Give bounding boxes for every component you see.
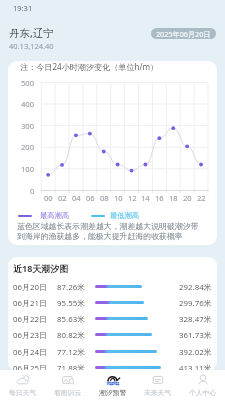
staticText: 最高潮高 xyxy=(40,211,70,220)
staticText: 292.84米 xyxy=(179,282,212,293)
button[interactable]: 06月23日 xyxy=(8,327,217,343)
staticText: 丹东,辽宁 xyxy=(9,26,54,40)
staticText: 06月25日 xyxy=(13,363,47,371)
staticText: 08 xyxy=(100,193,109,203)
staticText: 06月20日 xyxy=(13,282,47,293)
staticText: 06月24日 xyxy=(13,347,47,358)
staticText: 100 xyxy=(21,164,35,174)
button[interactable]: 06月20日 xyxy=(8,279,217,295)
staticText: 80.82米 xyxy=(57,330,86,341)
staticText: 未来天气 xyxy=(144,388,172,397)
staticText: 02 xyxy=(58,193,67,203)
staticText: 06 xyxy=(86,193,95,203)
staticText: 2025年06月20日 xyxy=(156,29,211,39)
button[interactable]: 06月24日 xyxy=(8,344,217,360)
staticText: 看图识云 xyxy=(54,388,82,397)
staticText: 300 xyxy=(21,121,35,131)
staticText: 328.47米 xyxy=(179,314,212,325)
staticText: 12 xyxy=(128,193,137,203)
staticText: 20 xyxy=(183,193,192,203)
staticText: 95.55米 xyxy=(57,298,86,309)
button[interactable]: 06月25日 xyxy=(8,360,217,371)
staticText: 每日天气 xyxy=(9,388,37,397)
staticText: 400 xyxy=(21,99,35,109)
staticText: 蓝色区域越长表示潮差越大，潮差越大说明破潮汐带到海岸的渔获越多，能极大提升赶海的… xyxy=(17,221,204,242)
button[interactable]: 潮汐预警 xyxy=(90,370,135,400)
staticText: 22 xyxy=(197,193,206,203)
staticText: 85.63米 xyxy=(57,314,86,325)
staticText: 200 xyxy=(21,142,35,152)
button[interactable]: 每日天气 xyxy=(0,370,45,400)
staticText: 04 xyxy=(72,193,81,203)
button[interactable]: 个人中心 xyxy=(180,370,225,400)
staticText: 14 xyxy=(141,193,150,203)
button[interactable]: 看图识云 xyxy=(45,370,90,400)
button[interactable]: 06月22日 xyxy=(8,311,217,327)
staticText: 40.13,124.40 xyxy=(9,41,54,51)
staticText: 77.12米 xyxy=(57,347,86,358)
staticText: 500 xyxy=(21,78,35,88)
staticText: 06月22日 xyxy=(13,314,47,325)
staticText: 87.26米 xyxy=(57,282,86,293)
button[interactable]: 2025年06月20日 xyxy=(151,28,216,39)
staticText: 个人中心 xyxy=(189,388,217,397)
staticText: 361.73米 xyxy=(179,330,212,341)
button[interactable]: 未来天气 xyxy=(135,370,180,400)
staticText: 潮汐预警 xyxy=(99,388,127,397)
staticText: 19:31 xyxy=(13,3,33,13)
staticText: 392.02米 xyxy=(179,347,212,358)
staticText: 71.88米 xyxy=(57,363,86,371)
button[interactable]: 06月21日 xyxy=(8,295,217,311)
staticText: 最低潮高 xyxy=(110,211,140,220)
staticText: 近18天潮汐图 xyxy=(13,262,69,274)
staticText: 注：今日24小时潮汐变化（单位h/m） xyxy=(20,61,159,72)
staticText: 299.76米 xyxy=(179,298,212,309)
staticText: 16 xyxy=(155,193,164,203)
staticText: 06月23日 xyxy=(13,330,47,341)
staticText: 10 xyxy=(114,193,123,203)
staticText: 413.11米 xyxy=(179,363,212,371)
staticText: 18 xyxy=(169,193,178,203)
staticText: 06月21日 xyxy=(13,298,47,309)
staticText: 0 xyxy=(30,186,35,196)
staticText: 00 xyxy=(44,193,53,203)
